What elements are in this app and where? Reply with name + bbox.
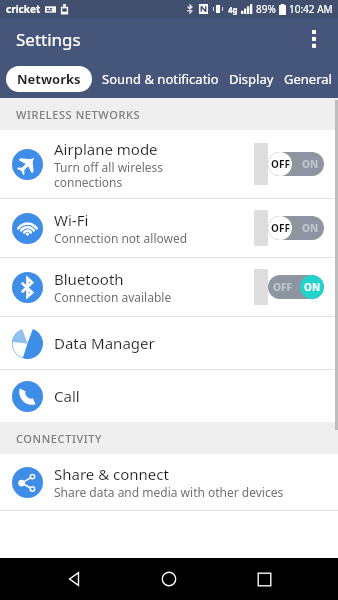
button[interactable]: More options [296,21,332,57]
staticText: Airplane mode [54,139,158,159]
button[interactable]: Wi-Fi off [268,216,324,240]
button[interactable]: Data Manager [0,317,338,369]
staticText: ON [302,157,319,171]
staticText: Connection available [54,289,172,305]
button[interactable]: Airplane mode off [268,152,324,176]
staticText: OFF [273,221,292,235]
button[interactable]: Airplane mode [0,130,338,198]
staticText: WIRELESS NETWORKS [16,107,141,122]
staticText: Data Manager [54,333,155,353]
button[interactable]: Networks [6,66,92,92]
button[interactable]: Display [229,64,274,94]
staticText: Settings [16,28,81,51]
staticText: Networks [17,70,81,88]
staticText: Connection not allowed [54,230,188,246]
staticText: ON [304,280,321,294]
staticText: ON [302,280,319,294]
staticText: Sound & notificatio [102,70,219,88]
staticText: CONNECTIVITY [16,431,103,446]
button[interactable]: Recent apps [243,558,285,600]
staticText: cricket [6,2,41,16]
staticText: Turn off all wireless connections [54,159,164,190]
button[interactable]: Sound & notificatio [102,64,219,94]
button[interactable]: Back [53,558,95,600]
button[interactable]: Wi-Fi [0,199,338,257]
staticText: Call [54,386,80,406]
staticText: Wi-Fi [54,210,89,230]
staticText: OFF [273,157,292,171]
button[interactable]: Share & connect [0,454,338,510]
staticText: Bluetooth [54,269,124,289]
staticText: Share data and media with other devices [54,484,284,500]
staticText: 10:42 AM [289,2,333,16]
staticText: General [284,70,332,88]
staticText: Display [229,70,274,88]
button[interactable]: Bluetooth on [268,275,324,299]
button[interactable]: Call [0,370,338,422]
staticText: 4g [228,4,238,15]
staticText: OFF [273,280,292,294]
staticText: OFF [271,221,290,235]
staticText: OFF [271,157,290,171]
button[interactable]: Home [148,558,190,600]
staticText: 89% [256,2,276,16]
button[interactable]: Bluetooth [0,258,338,316]
button[interactable]: General [284,64,332,94]
staticText: ON [302,221,319,235]
staticText: Share & connect [54,464,169,484]
